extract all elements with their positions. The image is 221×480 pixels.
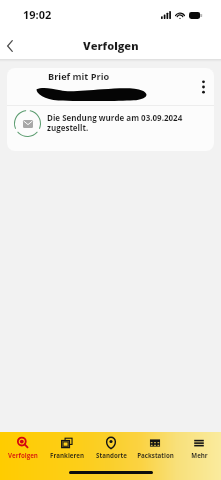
staticText: Brief mit Prio [48,70,110,83]
button[interactable]: Brief mit Prio [7,68,214,151]
staticText: Mehr [191,451,208,459]
button[interactable]: Mehr [177,432,221,480]
staticText: Standorte [96,451,127,459]
button[interactable]: Verfolgen [0,432,45,480]
button[interactable]: More options [192,76,214,98]
staticText: Verfolgen [83,38,139,53]
button[interactable]: Packstation [133,432,177,480]
button[interactable]: Back [0,33,23,59]
staticText: 19:02 [23,7,52,22]
staticText: Die Sendung wurde am 03.09.2024 zugestel… [47,112,183,134]
staticText: Frankieren [50,451,84,459]
button[interactable]: Frankieren [45,432,89,480]
button[interactable]: Standorte [89,432,133,480]
staticText: Packstation [137,451,174,459]
staticText: Verfolgen [8,451,38,459]
